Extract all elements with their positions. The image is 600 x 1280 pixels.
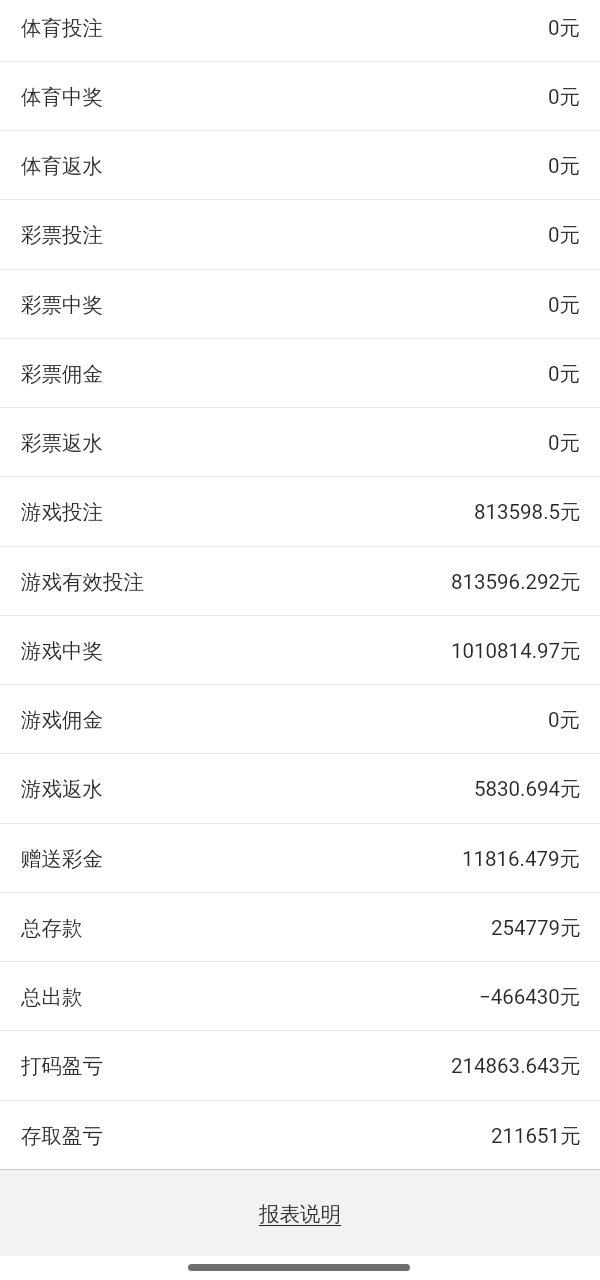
staticText: 0元 xyxy=(548,15,581,41)
staticText: 游戏佣金 xyxy=(21,707,103,733)
staticText: 0元 xyxy=(548,430,581,456)
button[interactable]: 游戏返水 xyxy=(0,754,600,824)
staticText: 游戏有效投注 xyxy=(21,569,144,595)
staticText: 存取盈亏 xyxy=(21,1123,103,1149)
button[interactable]: 存取盈亏 xyxy=(0,1101,600,1170)
button[interactable]: 彩票投注 xyxy=(0,200,600,270)
staticText: 0元 xyxy=(548,707,581,733)
staticText: 彩票投注 xyxy=(21,222,103,248)
button[interactable]: 总存款 xyxy=(0,893,600,962)
button[interactable]: 体育中奖 xyxy=(0,62,600,131)
staticText: 0元 xyxy=(548,84,581,110)
button[interactable]: 打码盈亏 xyxy=(0,1031,600,1101)
staticText: 0元 xyxy=(548,222,581,248)
staticText: 赠送彩金 xyxy=(21,846,103,872)
staticText: 彩票中奖 xyxy=(21,292,103,318)
staticText: 游戏投注 xyxy=(21,499,103,525)
staticText: 彩票返水 xyxy=(21,430,103,456)
staticText: 总存款 xyxy=(21,915,83,941)
staticText: 游戏中奖 xyxy=(21,638,103,664)
staticText: 5830.694元 xyxy=(474,776,581,802)
staticText: 11816.479元 xyxy=(462,846,581,872)
button[interactable]: 彩票佣金 xyxy=(0,339,600,408)
button[interactable]: 游戏佣金 xyxy=(0,685,600,754)
button[interactable]: 游戏有效投注 xyxy=(0,547,600,616)
button[interactable]: 赠送彩金 xyxy=(0,824,600,893)
staticText: 254779元 xyxy=(491,915,581,941)
staticText: 813596.292元 xyxy=(451,569,581,595)
staticText: 体育返水 xyxy=(21,153,103,179)
staticText: 体育投注 xyxy=(21,15,103,41)
button[interactable]: 报表说明 xyxy=(243,1193,357,1235)
staticText: 214863.643元 xyxy=(451,1053,581,1079)
button[interactable]: 游戏投注 xyxy=(0,477,600,547)
staticText: 打码盈亏 xyxy=(21,1053,103,1079)
button[interactable]: 彩票中奖 xyxy=(0,270,600,339)
staticText: 0元 xyxy=(548,292,581,318)
staticText: 813598.5元 xyxy=(474,499,581,525)
button[interactable]: 体育投注 xyxy=(0,0,600,62)
staticText: 体育中奖 xyxy=(21,84,103,110)
button[interactable]: 游戏中奖 xyxy=(0,616,600,685)
button[interactable]: 总出款 xyxy=(0,962,600,1031)
staticText: 总出款 xyxy=(21,984,83,1010)
staticText: 彩票佣金 xyxy=(21,361,103,387)
staticText: 报表说明 xyxy=(259,1201,341,1227)
staticText: 0元 xyxy=(548,153,581,179)
staticText: 游戏返水 xyxy=(21,776,103,802)
button[interactable]: 体育返水 xyxy=(0,131,600,200)
staticText: 1010814.97元 xyxy=(451,638,581,664)
staticText: −466430元 xyxy=(479,984,581,1010)
button[interactable]: 彩票返水 xyxy=(0,408,600,477)
staticText: 0元 xyxy=(548,361,581,387)
staticText: 211651元 xyxy=(491,1123,581,1149)
